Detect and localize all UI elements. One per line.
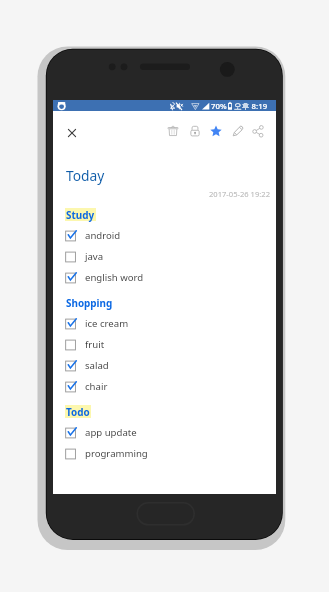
button[interactable]: english word	[53, 267, 276, 288]
staticText: chair	[85, 380, 108, 393]
button[interactable]: fruit	[53, 334, 276, 355]
button[interactable]: Edit	[227, 120, 248, 141]
button[interactable]: Shopping	[66, 296, 113, 309]
staticText: english word	[85, 271, 144, 284]
staticText: 70%	[211, 101, 227, 112]
button[interactable]: ice cream	[53, 313, 276, 334]
button[interactable]: chair	[53, 376, 276, 397]
button[interactable]: android	[53, 225, 276, 246]
button[interactable]: Delete	[162, 120, 183, 141]
staticText: Today	[66, 166, 105, 185]
staticText: Todo	[66, 405, 90, 418]
button[interactable]: salad	[53, 355, 276, 376]
staticText: Study	[66, 208, 95, 221]
button[interactable]: java	[53, 246, 276, 267]
button[interactable]: Favorite	[205, 120, 226, 141]
button[interactable]: Study	[66, 208, 95, 221]
staticText: salad	[85, 359, 109, 372]
staticText: 2017-05-26 19:22	[209, 189, 271, 199]
button[interactable]: Todo	[66, 405, 90, 418]
staticText: ice cream	[85, 317, 129, 330]
staticText: 오후 8:19	[234, 101, 268, 112]
staticText: programming	[85, 447, 148, 460]
button[interactable]: Lock	[184, 120, 205, 141]
staticText: java	[85, 250, 104, 263]
button[interactable]: Close	[58, 119, 85, 146]
staticText: android	[85, 229, 121, 242]
button[interactable]: app update	[53, 422, 276, 443]
staticText: fruit	[85, 338, 105, 351]
button[interactable]: programming	[53, 443, 276, 464]
staticText: app update	[85, 426, 137, 439]
button[interactable]: Share	[247, 120, 268, 141]
staticText: Shopping	[66, 296, 113, 309]
